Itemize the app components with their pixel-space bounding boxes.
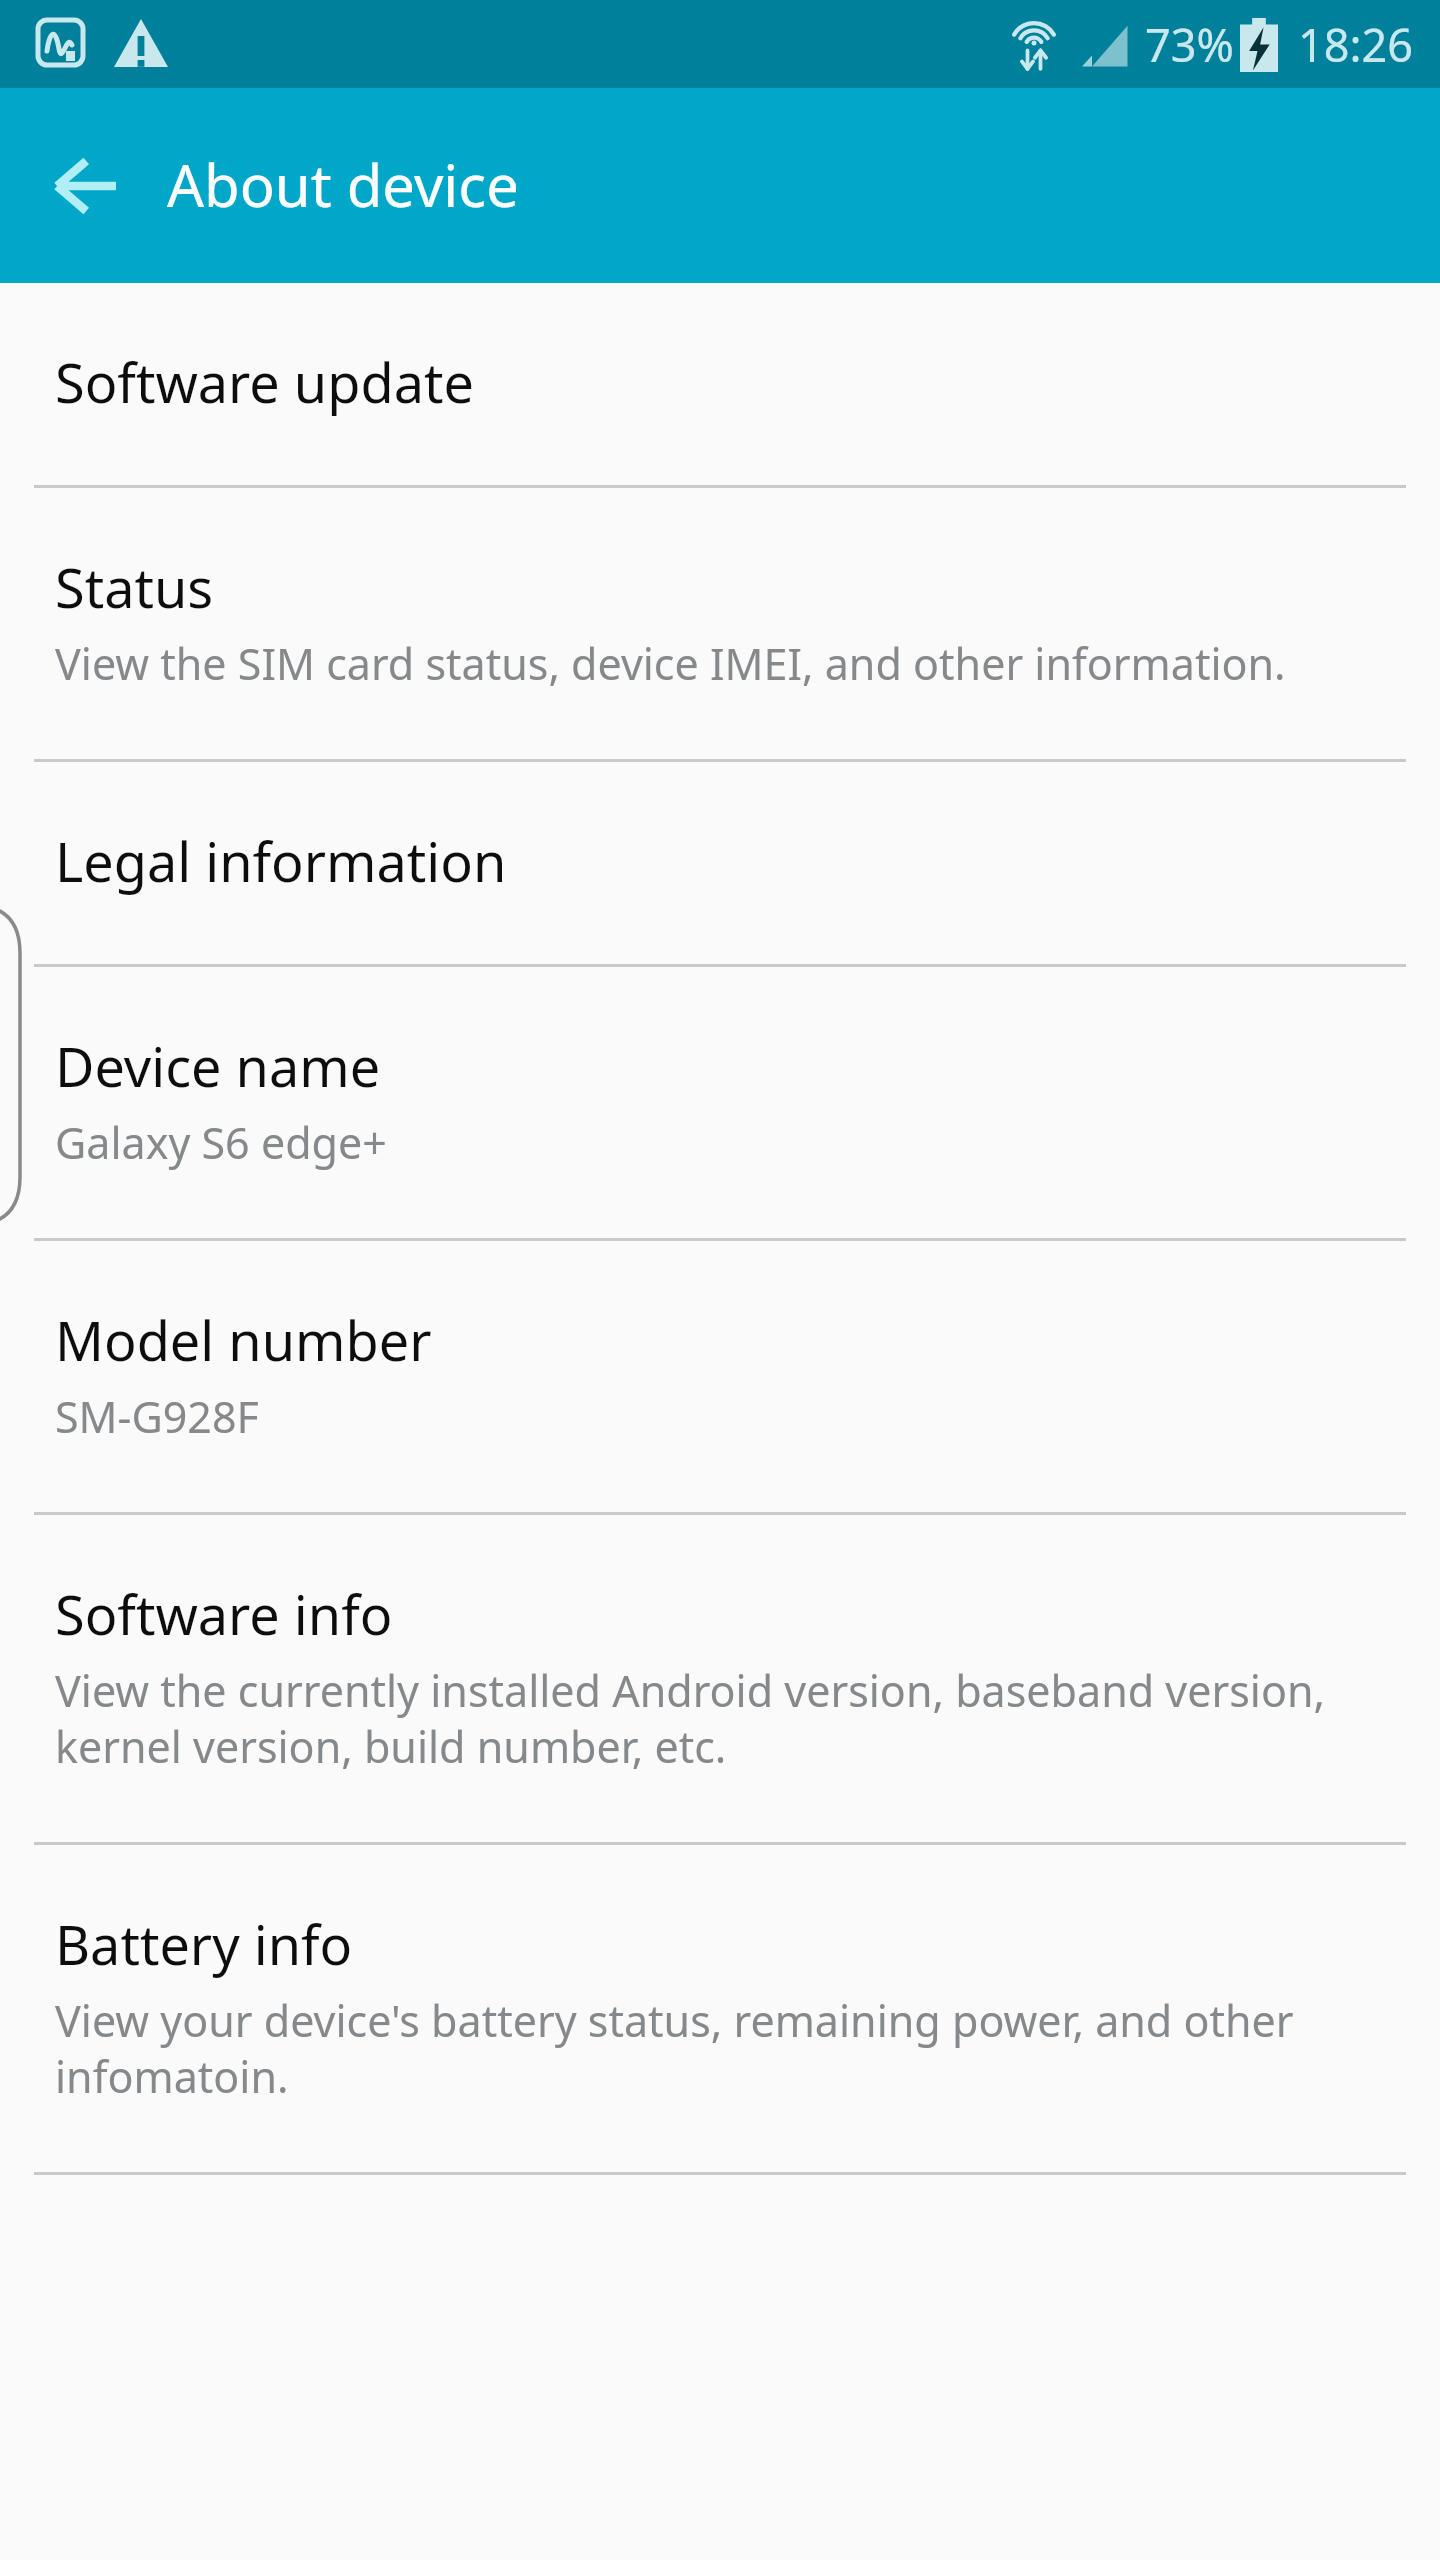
staticText: Software info [55,1577,393,1651]
button[interactable]: Legal information [0,762,1440,964]
staticText: View the SIM card status, device IMEI, a… [55,634,1286,693]
staticText: View the currently installed Android ver… [55,1661,1392,1776]
staticText: Legal information [55,824,507,898]
button[interactable]: Model number [0,1241,1440,1512]
staticText: About device [167,145,519,224]
button[interactable]: Battery info [0,1845,1440,2172]
staticText: Model number [55,1303,432,1377]
button[interactable]: Software update [0,283,1440,485]
staticText: Battery info [55,1907,353,1981]
staticText: View your device's battery status, remai… [55,1991,1392,2106]
staticText: 73% [1145,14,1234,75]
staticText: Device name [55,1029,381,1103]
staticText: Software update [55,345,474,419]
staticText: 18:26 [1298,14,1414,75]
button[interactable]: Navigate up [20,121,150,251]
button[interactable]: Software info [0,1515,1440,1842]
button[interactable]: Device name [0,967,1440,1238]
staticText: SM-G928F [55,1387,259,1446]
button[interactable]: Status [0,488,1440,759]
staticText: Status [55,550,214,624]
staticText: Galaxy S6 edge+ [55,1113,387,1172]
